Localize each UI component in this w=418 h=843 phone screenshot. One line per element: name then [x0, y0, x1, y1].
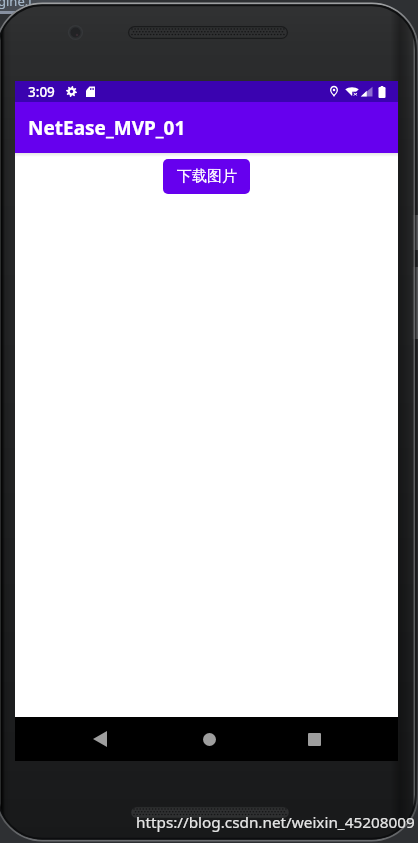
button[interactable]: Back — [62, 717, 137, 761]
staticText: 下载图片 — [177, 167, 237, 186]
staticText: gine.i — [0, 0, 32, 10]
button[interactable]: Recent apps — [277, 717, 352, 761]
button[interactable]: Home — [172, 717, 247, 761]
staticText: NetEase_MVP_01 — [28, 115, 186, 141]
staticText: 3:09 — [28, 83, 55, 101]
staticText: https://blog.csdn.net/weixin_45208009 — [136, 812, 415, 833]
button[interactable]: 下载图片 — [163, 159, 250, 194]
button[interactable]: NetEase_MVP_01 — [15, 102, 398, 153]
